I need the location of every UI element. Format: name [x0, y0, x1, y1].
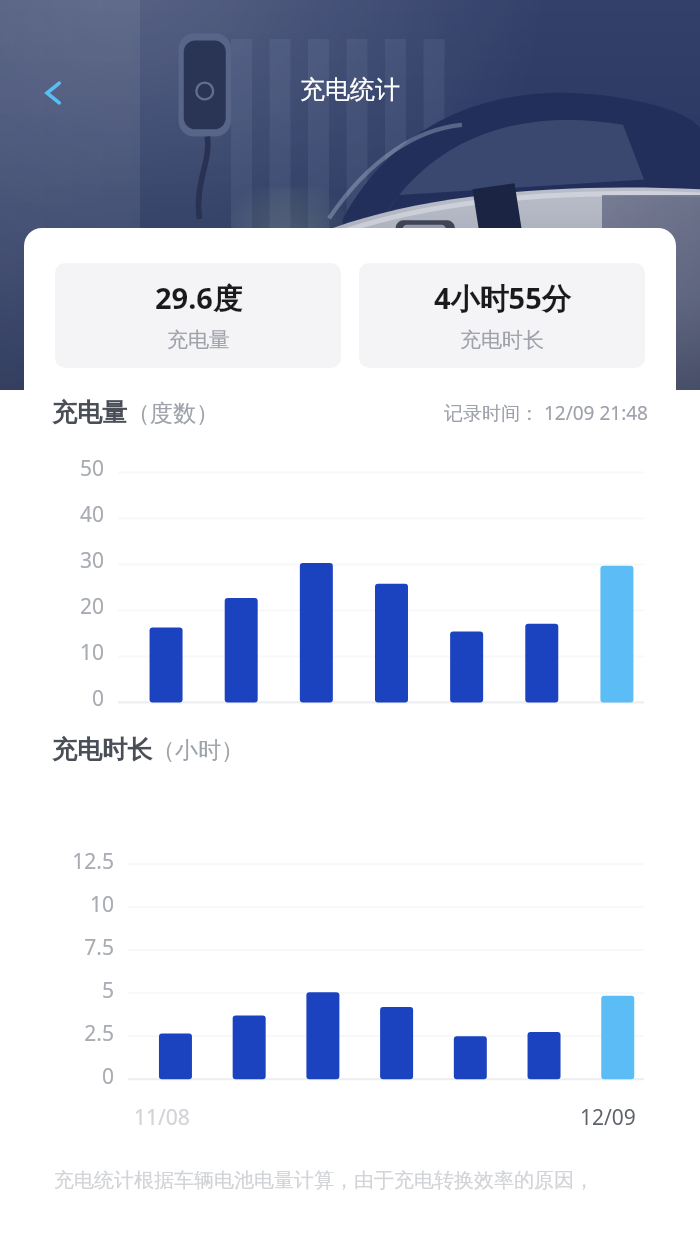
staticText: 10 — [89, 890, 114, 919]
staticText: 12.5 — [72, 847, 114, 876]
button[interactable]: Back — [26, 66, 80, 120]
staticText: 充电量 — [167, 327, 230, 353]
staticText: 记录时间： 12/09 21:48 — [444, 400, 648, 426]
staticText: 充电量 — [52, 397, 127, 428]
staticText: 20 — [79, 592, 104, 621]
staticText: 40 — [79, 500, 104, 529]
staticText: 2.5 — [84, 1019, 114, 1048]
staticText: 7.5 — [84, 933, 114, 962]
staticText: 5 — [101, 976, 114, 1005]
staticText: （度数） — [127, 399, 219, 428]
staticText: 0 — [101, 1062, 114, 1091]
staticText: （小时） — [152, 736, 244, 765]
button[interactable]: 29.6度 — [55, 263, 341, 368]
button[interactable]: 4小时55分 — [359, 263, 645, 368]
staticText: 充电时长 — [52, 734, 152, 765]
staticText: 充电统计根据车辆电池电量计算，由于充电转换效率的原因， — [54, 1168, 594, 1193]
staticText: 充电时长 — [460, 327, 544, 353]
staticText: 29.6度 — [155, 278, 242, 318]
staticText: 50 — [79, 454, 104, 483]
staticText: 4小时55分 — [434, 278, 571, 318]
staticText: 10 — [79, 638, 104, 667]
staticText: 11/08 — [134, 1103, 190, 1132]
staticText: 充电统计 — [300, 74, 400, 105]
staticText: 30 — [79, 546, 104, 575]
staticText: 0 — [91, 684, 104, 713]
staticText: 12/09 — [580, 1103, 636, 1132]
